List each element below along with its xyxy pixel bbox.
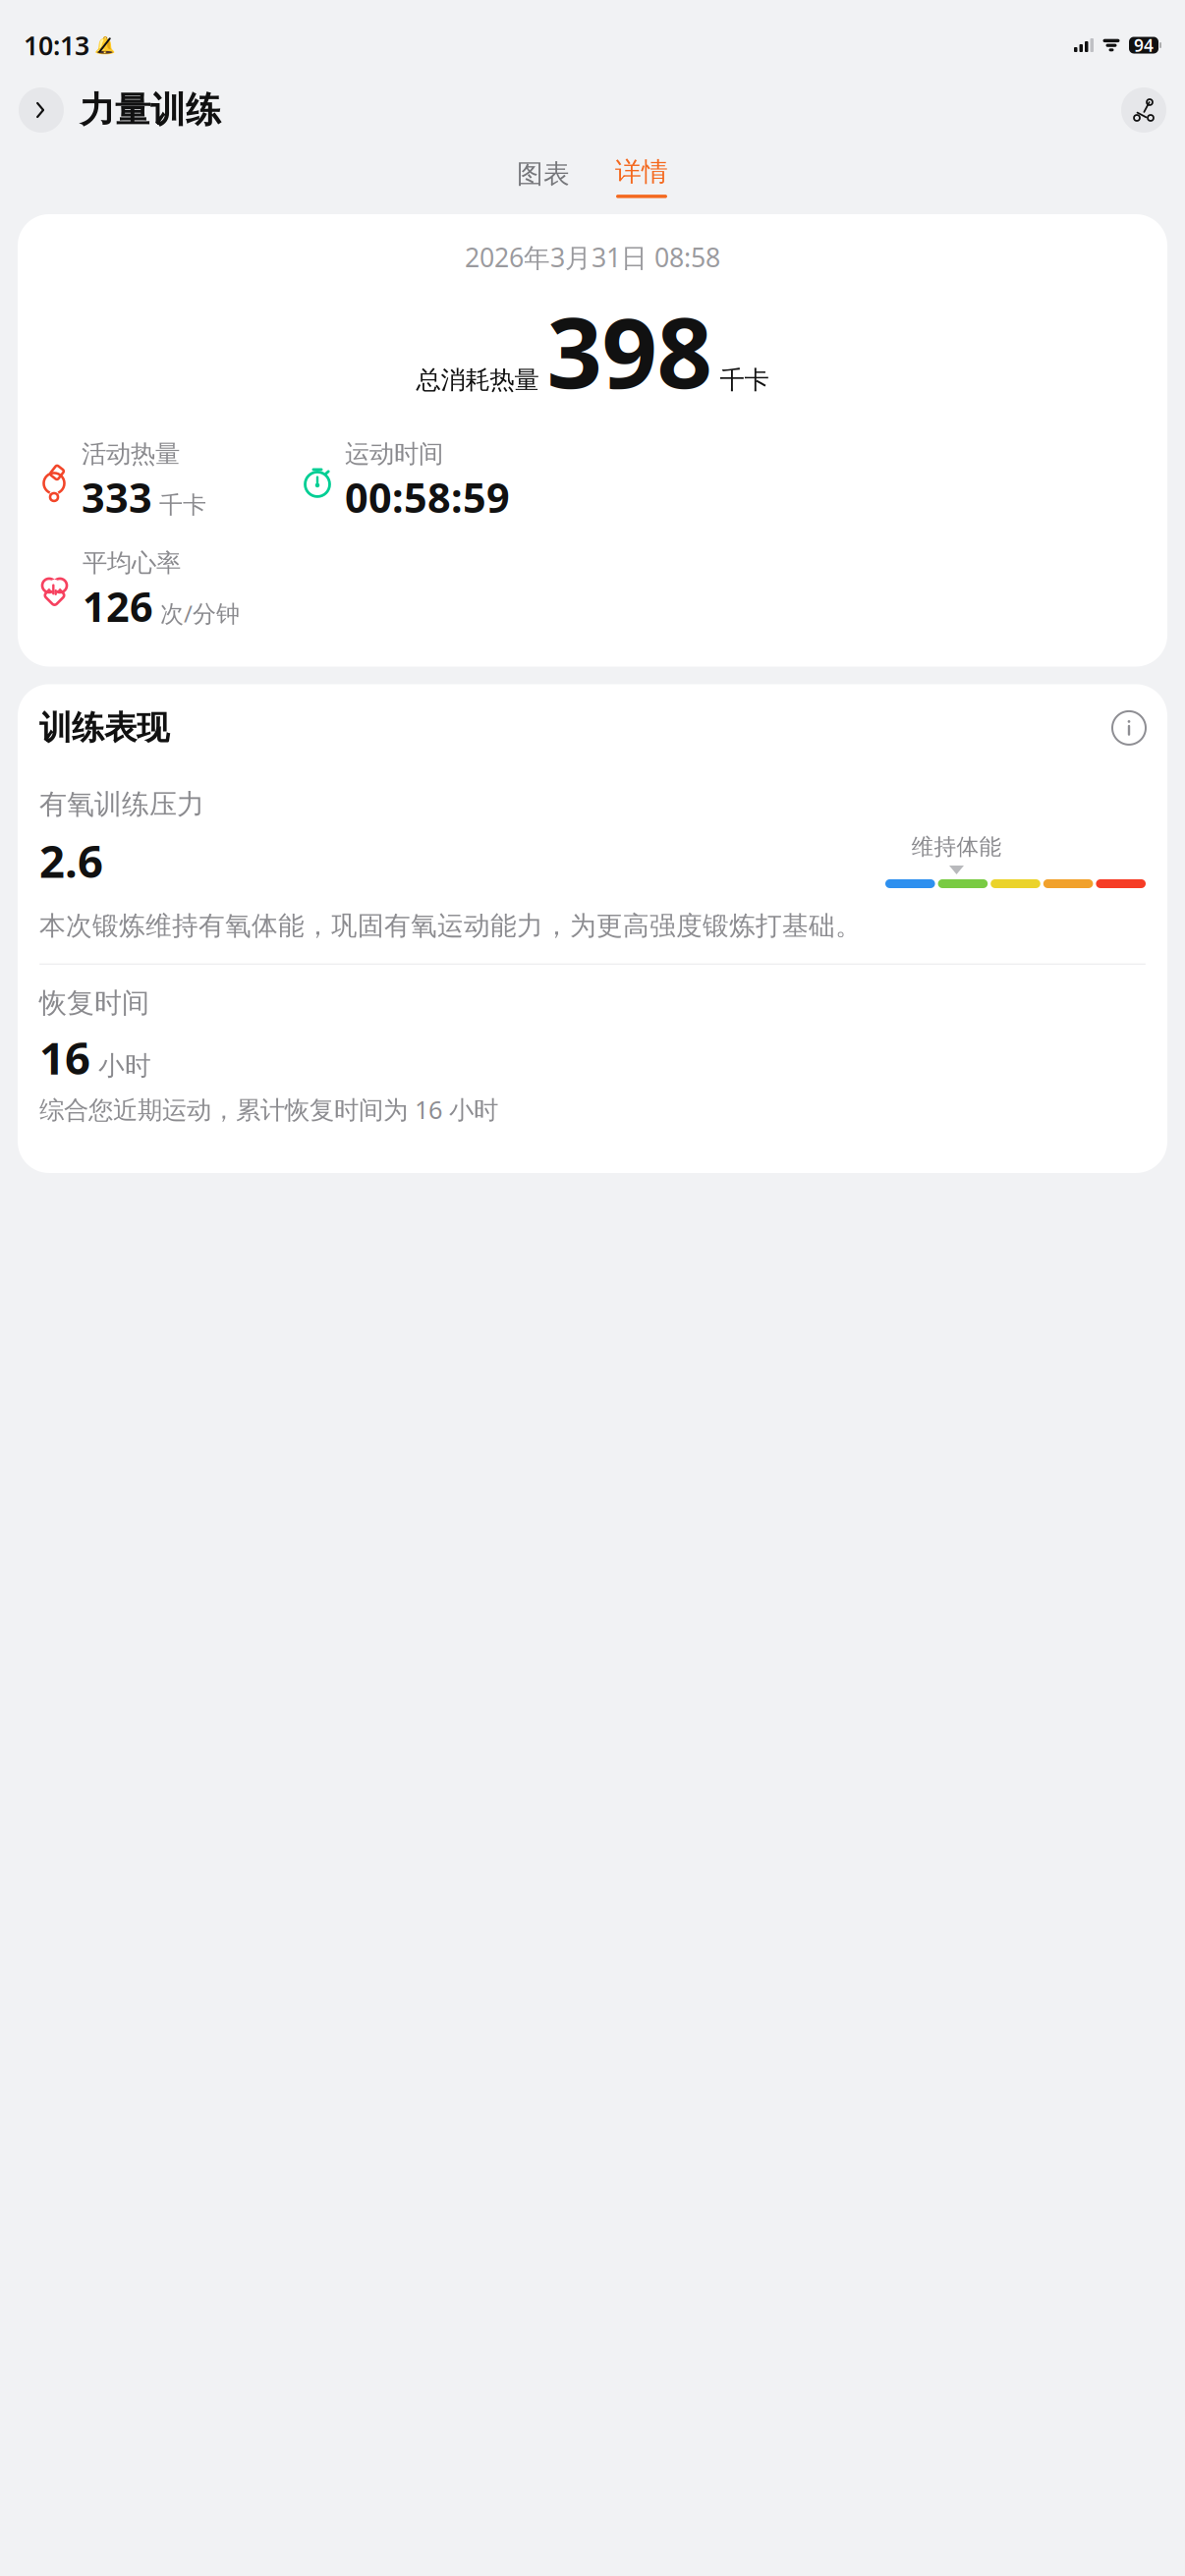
staticText: 活动热量 bbox=[82, 439, 180, 469]
button[interactable]: Info bbox=[1112, 711, 1146, 745]
staticText: 千卡 bbox=[159, 491, 206, 520]
button[interactable]: 详情 bbox=[609, 150, 674, 198]
staticText: 16 bbox=[39, 1028, 90, 1087]
staticText: 图表 bbox=[517, 158, 570, 190]
staticText: 本次锻炼维持有氧体能，巩固有氧运动能力，为更高强度锻炼打基础。 bbox=[39, 910, 862, 942]
staticText: 总消耗热量 bbox=[416, 365, 539, 395]
staticText: 398 bbox=[547, 286, 712, 415]
staticText: 详情 bbox=[615, 156, 668, 188]
button[interactable]: 图表 bbox=[511, 152, 576, 196]
staticText: 小时 bbox=[98, 1050, 151, 1082]
staticText: 运动时间 bbox=[345, 439, 443, 469]
staticText: 2026年3月31日 08:58 bbox=[465, 240, 720, 274]
staticText: 综合您近期运动，累计恢复时间为 16 小时 bbox=[39, 1093, 498, 1126]
staticText: 训练表现 bbox=[39, 708, 169, 748]
staticText: 平均心率 bbox=[83, 548, 181, 578]
staticText: 力量训练 bbox=[80, 88, 221, 132]
staticText: 千卡 bbox=[720, 365, 769, 395]
staticText: 126 bbox=[83, 579, 153, 633]
staticText: 2.6 bbox=[39, 831, 103, 890]
staticText: 🔔 bbox=[94, 35, 115, 55]
button[interactable]: Share bbox=[1121, 87, 1166, 133]
staticText: 333 bbox=[82, 470, 152, 524]
staticText: 00:58:59 bbox=[345, 470, 510, 524]
staticText: 10:13 bbox=[24, 28, 89, 63]
staticText: 恢复时间 bbox=[39, 986, 149, 1020]
staticText: 维持体能 bbox=[911, 833, 1002, 861]
button[interactable]: Back bbox=[19, 87, 64, 133]
staticText: 有氧训练压力 bbox=[39, 787, 204, 821]
staticText: 次/分钟 bbox=[160, 597, 240, 629]
staticText: 94 bbox=[1134, 34, 1154, 56]
